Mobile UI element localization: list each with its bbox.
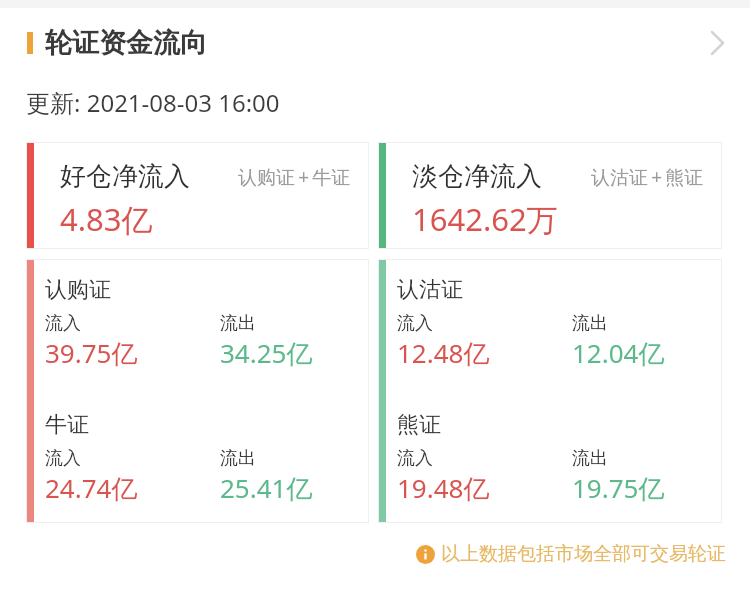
staticText: 认购证 + 牛证 <box>238 164 351 190</box>
staticText: 轮证资金流向 <box>45 26 207 60</box>
staticText: 更新: 2021-08-03 16:00 <box>26 86 280 119</box>
staticText: 19.75亿 <box>572 470 665 506</box>
staticText: 以上数据包括市场全部可交易轮证 <box>441 542 726 566</box>
staticText: 流入 <box>397 447 433 470</box>
staticText: 19.48亿 <box>397 470 490 506</box>
staticText: 25.41亿 <box>220 470 313 506</box>
staticText: 流出 <box>572 312 608 335</box>
staticText: 好仓净流入 <box>60 160 190 193</box>
staticText: 34.25亿 <box>220 335 313 371</box>
staticText: 1642.62万 <box>412 198 558 240</box>
staticText: 流入 <box>397 312 433 335</box>
staticText: 淡仓净流入 <box>412 160 542 193</box>
staticText: 流出 <box>572 447 608 470</box>
staticText: 流出 <box>220 312 256 335</box>
button[interactable]: 轮证资金流向 <box>0 21 750 65</box>
button[interactable]: 说明 <box>416 542 726 566</box>
button[interactable]: 好仓净流入 <box>26 142 369 249</box>
button[interactable]: 淡仓净流入 <box>378 142 722 249</box>
button[interactable]: 认沽证 <box>378 259 722 523</box>
button[interactable]: 查看更多 <box>698 23 738 63</box>
staticText: 流出 <box>220 447 256 470</box>
staticText: 12.04亿 <box>572 335 665 371</box>
staticText: 流入 <box>45 447 81 470</box>
staticText: 认购证 <box>45 276 111 304</box>
staticText: 4.83亿 <box>60 198 153 240</box>
staticText: 流入 <box>45 312 81 335</box>
other: 说明 <box>416 545 435 564</box>
staticText: 认沽证 + 熊证 <box>591 164 704 190</box>
staticText: 熊证 <box>397 411 441 439</box>
button[interactable]: 认购证 <box>26 259 369 523</box>
staticText: 39.75亿 <box>45 335 138 371</box>
staticText: 12.48亿 <box>397 335 490 371</box>
staticText: 认沽证 <box>397 276 463 304</box>
staticText: 牛证 <box>45 411 89 439</box>
staticText: 24.74亿 <box>45 470 138 506</box>
